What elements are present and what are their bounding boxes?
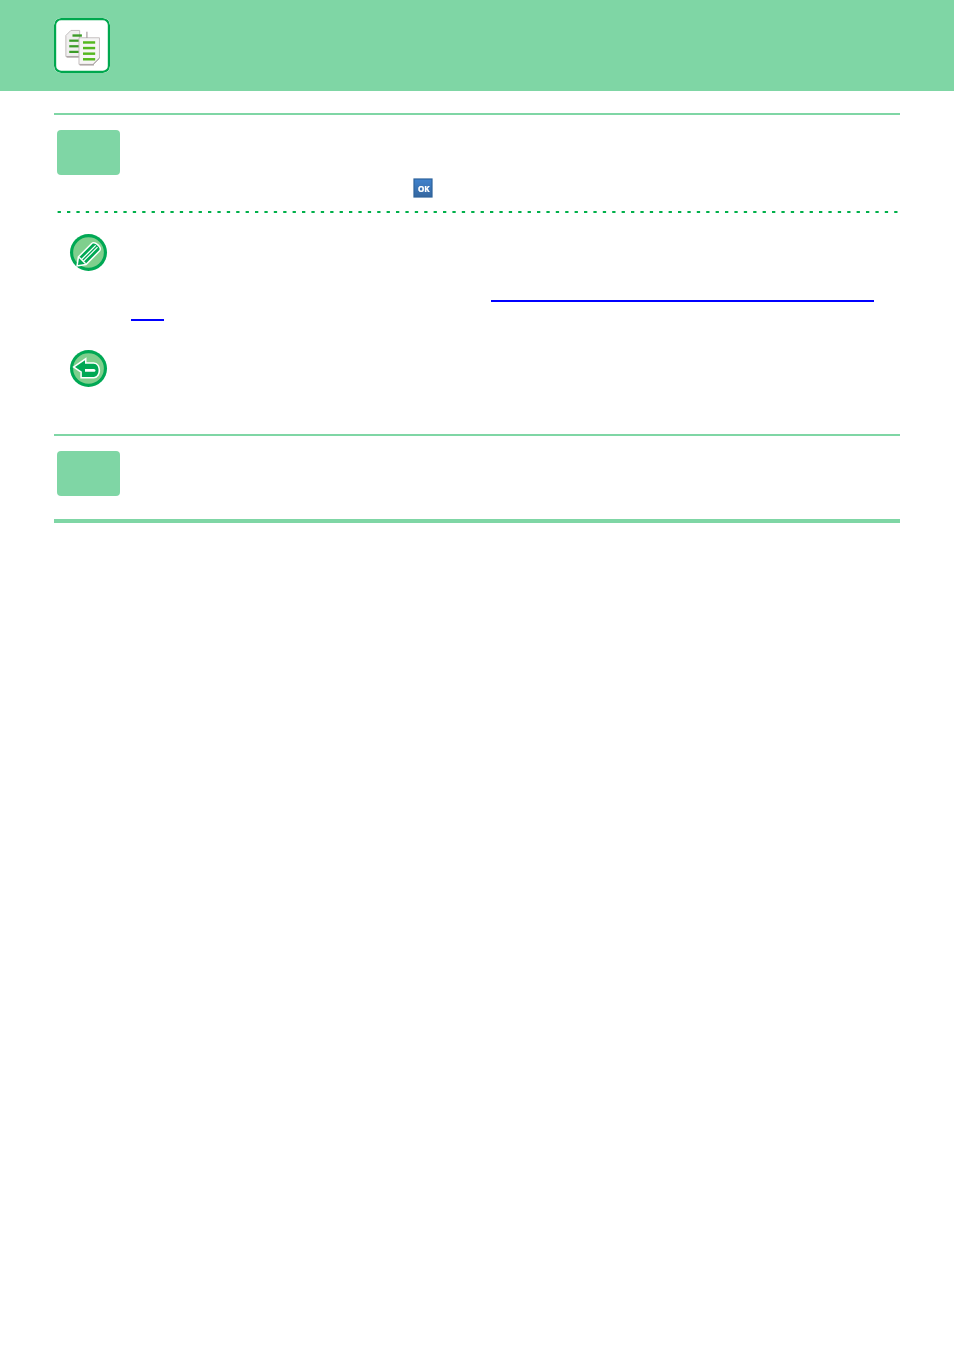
- button[interactable]: Note: [70, 234, 107, 271]
- button[interactable]: Step 1: [57, 130, 120, 175]
- staticText: OK: [418, 183, 430, 194]
- button[interactable]: OK: [414, 179, 432, 197]
- button[interactable]: Cancel: [70, 350, 107, 387]
- button[interactable]: Copy: [54, 18, 110, 73]
- button[interactable]: Step 2: [57, 451, 120, 496]
